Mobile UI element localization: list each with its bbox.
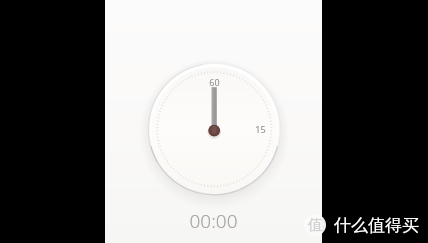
- staticText: 00:00: [189, 208, 238, 232]
- button[interactable]: Timer dial: [126, 41, 302, 217]
- other: Logo: [304, 214, 326, 236]
- button[interactable]: 00:00: [105, 208, 322, 232]
- staticText: 值: [308, 216, 323, 235]
- staticText: 60: [209, 76, 220, 88]
- staticText: 15: [255, 123, 266, 135]
- staticText: 什么值得买: [334, 215, 419, 235]
